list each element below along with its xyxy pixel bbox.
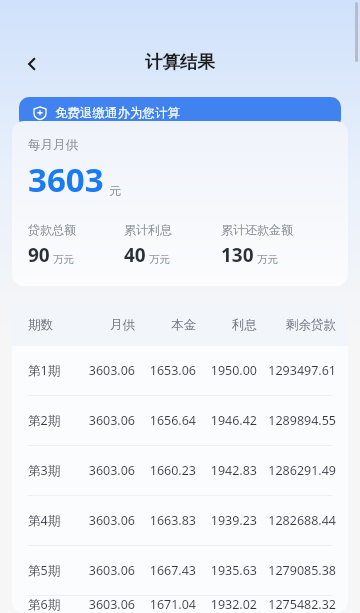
- staticText: 累计还款金额: [221, 222, 293, 237]
- staticText: 元: [109, 183, 121, 198]
- staticText: 万元: [149, 253, 170, 266]
- staticText: 3603.06: [74, 596, 135, 613]
- button[interactable]: 免费退缴通办为您计算: [19, 97, 341, 129]
- staticText: 1663.83: [135, 512, 196, 529]
- staticText: 1279085.38: [257, 562, 336, 579]
- staticText: 1935.63: [196, 562, 257, 579]
- staticText: 1932.02: [196, 596, 257, 613]
- staticText: 月供: [74, 317, 135, 333]
- staticText: 第1期: [28, 362, 74, 379]
- staticText: 第5期: [28, 562, 74, 579]
- staticText: 3603: [28, 157, 104, 202]
- button[interactable]: 第2期: [12, 396, 348, 445]
- button[interactable]: 第3期: [12, 446, 348, 495]
- staticText: 1275482.32: [257, 596, 336, 613]
- staticText: 1656.64: [135, 412, 196, 429]
- staticText: 130: [221, 242, 254, 268]
- button[interactable]: 第6期: [12, 596, 348, 613]
- staticText: 第2期: [28, 412, 74, 429]
- staticText: 第6期: [28, 596, 74, 613]
- staticText: 3603.06: [74, 412, 135, 429]
- staticText: 计算结果: [0, 51, 360, 73]
- staticText: 1660.23: [135, 462, 196, 479]
- button[interactable]: 第1期: [12, 346, 348, 395]
- staticText: 累计利息: [124, 222, 172, 237]
- staticText: 万元: [257, 253, 278, 266]
- button[interactable]: Back: [14, 46, 50, 82]
- staticText: 免费退缴通办为您计算: [55, 105, 180, 121]
- staticText: 利息: [196, 317, 257, 333]
- staticText: 3603.06: [74, 512, 135, 529]
- staticText: 3603.06: [74, 462, 135, 479]
- staticText: 第4期: [28, 512, 74, 529]
- staticText: 期数: [28, 317, 74, 333]
- staticText: 本金: [135, 317, 196, 333]
- staticText: 3603.06: [74, 562, 135, 579]
- staticText: 1950.00: [196, 362, 257, 379]
- staticText: 90: [28, 242, 50, 268]
- staticText: 1286291.49: [257, 462, 336, 479]
- staticText: 1289894.55: [257, 412, 336, 429]
- staticText: 万元: [53, 253, 74, 266]
- staticText: 剩余贷款: [257, 317, 336, 333]
- button[interactable]: 第5期: [12, 546, 348, 595]
- staticText: 1671.04: [135, 596, 196, 613]
- staticText: 1946.42: [196, 412, 257, 429]
- staticText: 贷款总额: [28, 222, 76, 237]
- staticText: 1667.43: [135, 562, 196, 579]
- staticText: 1282688.44: [257, 512, 336, 529]
- staticText: 1293497.61: [257, 362, 336, 379]
- staticText: 1939.23: [196, 512, 257, 529]
- button[interactable]: 第4期: [12, 496, 348, 545]
- staticText: 第3期: [28, 462, 74, 479]
- staticText: 3603.06: [74, 362, 135, 379]
- staticText: 每月月供: [28, 137, 78, 153]
- staticText: 40: [124, 242, 146, 268]
- staticText: 1942.83: [196, 462, 257, 479]
- staticText: 1653.06: [135, 362, 196, 379]
